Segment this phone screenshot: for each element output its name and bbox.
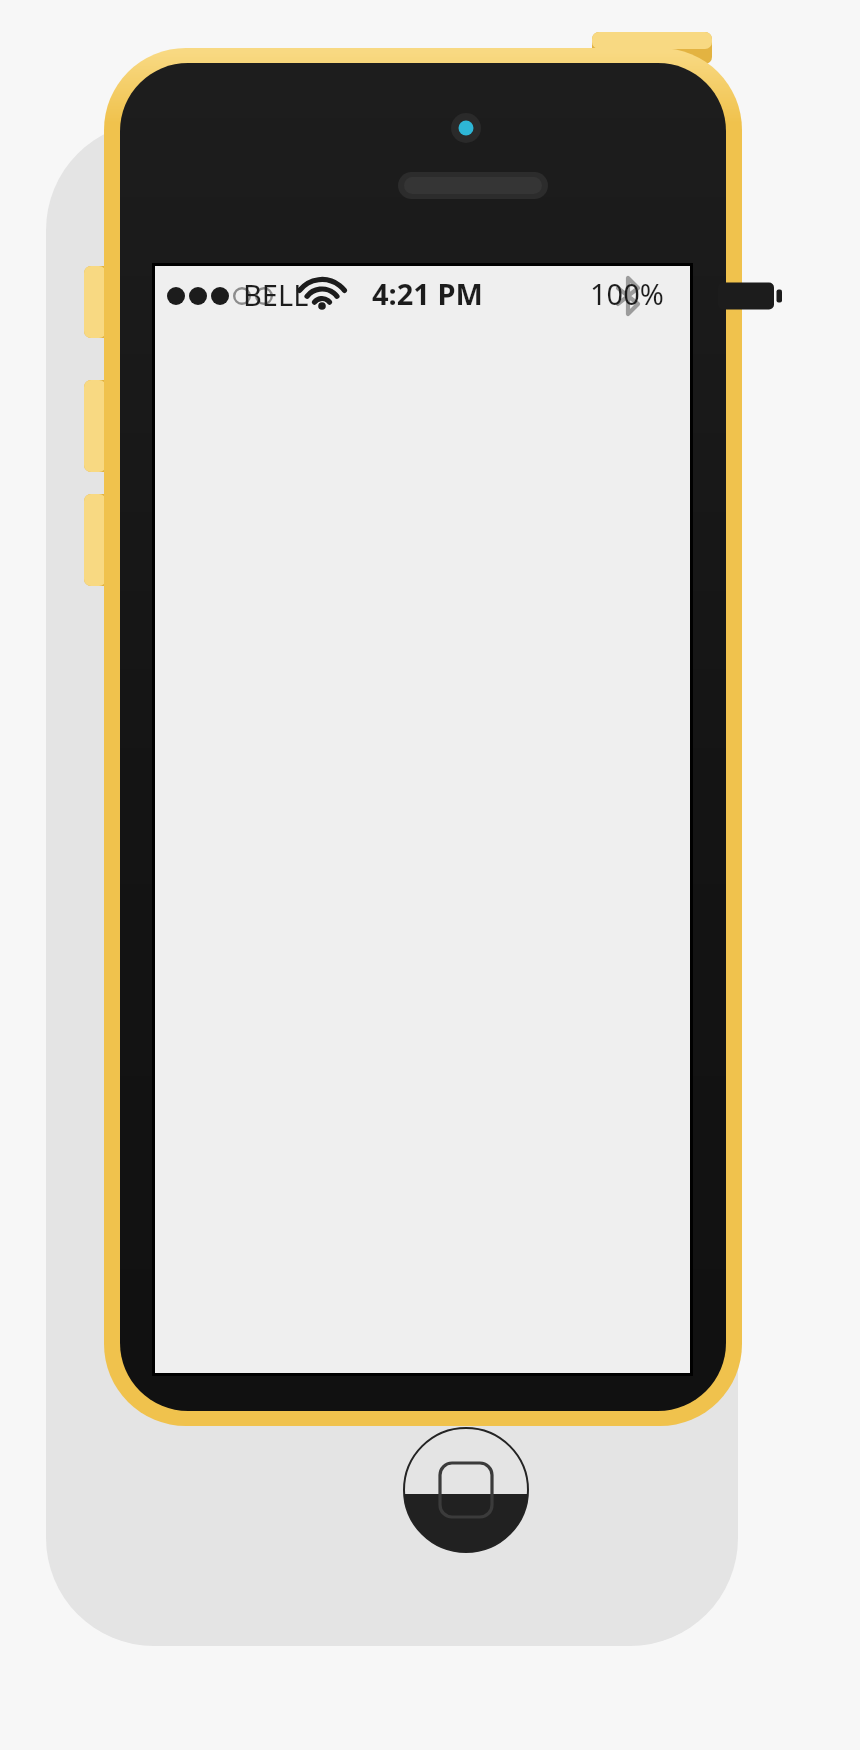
other: iPhone 5c mockup, blank screen [0,0,860,1750]
staticText: 100% [590,274,664,313]
staticText: BELL [243,275,309,314]
staticText: 4:21 PM [372,274,483,313]
